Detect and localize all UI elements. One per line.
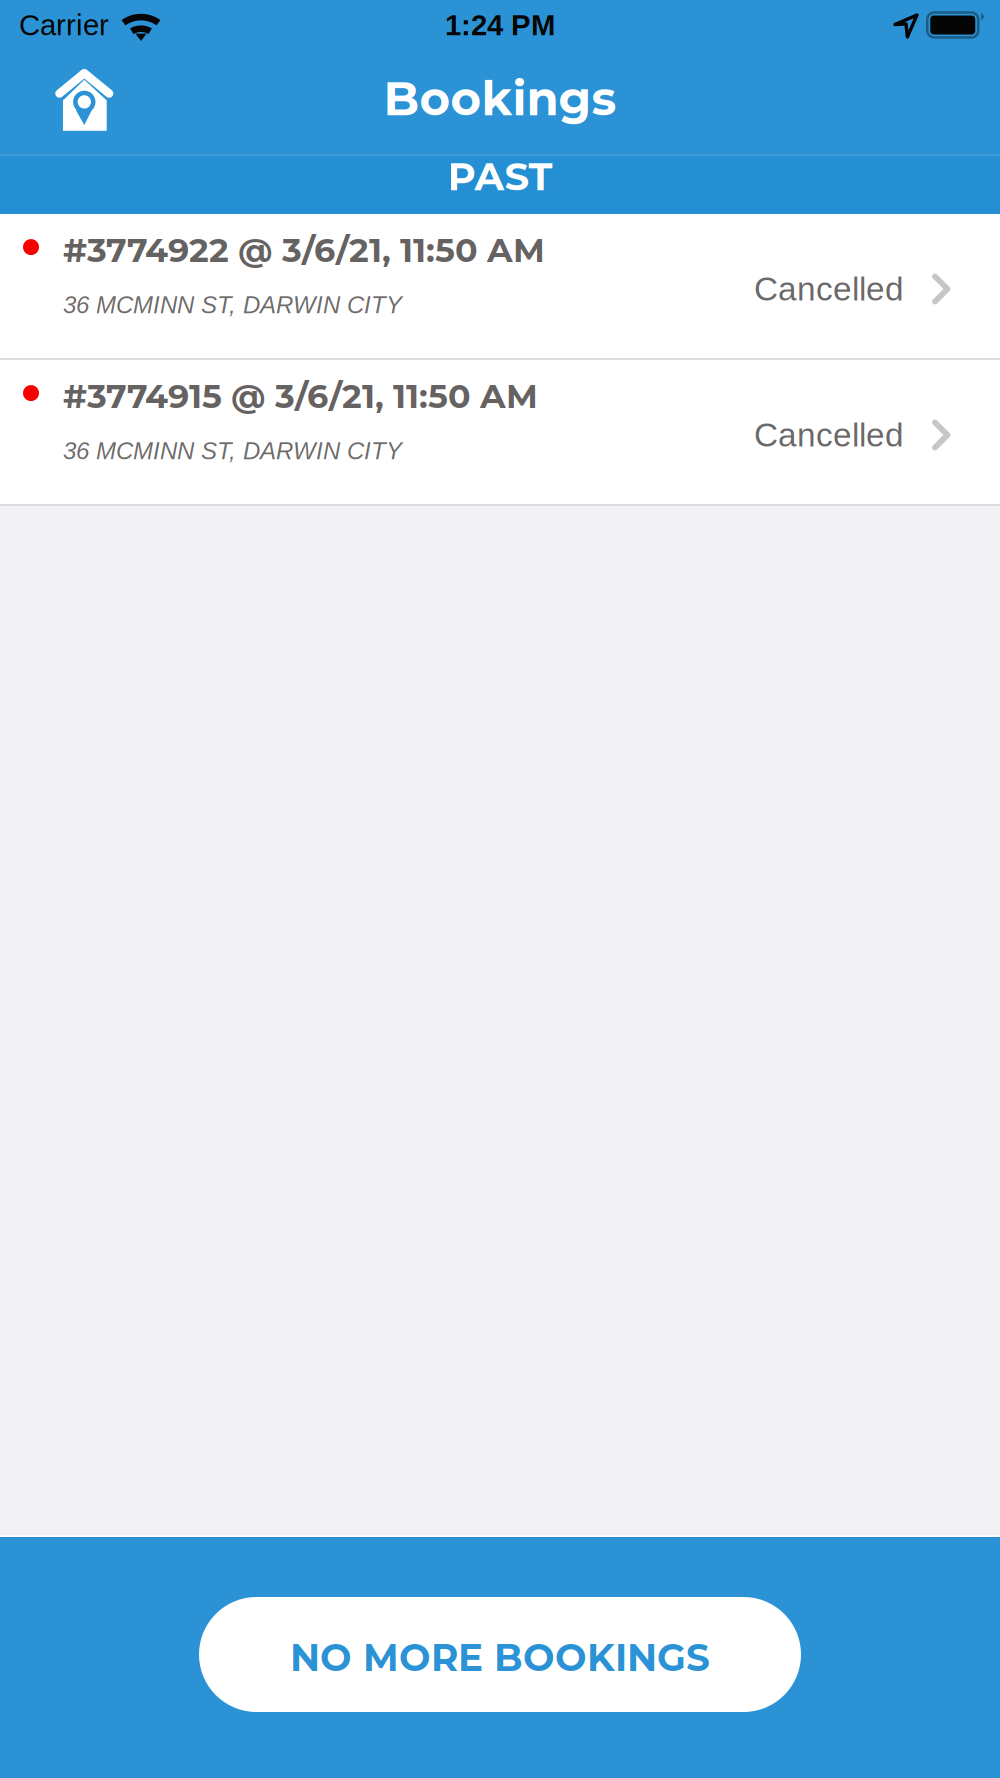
staticText: 36 MCMINN ST, DARWIN CITY bbox=[63, 291, 402, 318]
staticText: #3774915 @ 3/6/21, 11:50 AM bbox=[63, 376, 538, 416]
staticText: Cancelled bbox=[754, 270, 904, 308]
staticText: NO MORE BOOKINGS bbox=[290, 1635, 710, 1680]
staticText: #3774922 @ 3/6/21, 11:50 AM bbox=[63, 230, 545, 270]
staticText: Bookings bbox=[383, 70, 616, 127]
button[interactable]: #3774915 @ 3/6/21, 11:50 AM bbox=[0, 360, 1000, 504]
staticText: 1:24 PM bbox=[445, 9, 555, 41]
staticText: Cancelled bbox=[754, 416, 904, 454]
button[interactable]: NO MORE BOOKINGS bbox=[199, 1597, 801, 1712]
staticText: PAST bbox=[447, 153, 552, 200]
button[interactable]: Home bbox=[0, 57, 138, 147]
staticText: 36 MCMINN ST, DARWIN CITY bbox=[63, 437, 402, 464]
staticText: Carrier bbox=[19, 9, 109, 41]
button[interactable]: #3774922 @ 3/6/21, 11:50 AM bbox=[0, 214, 1000, 358]
